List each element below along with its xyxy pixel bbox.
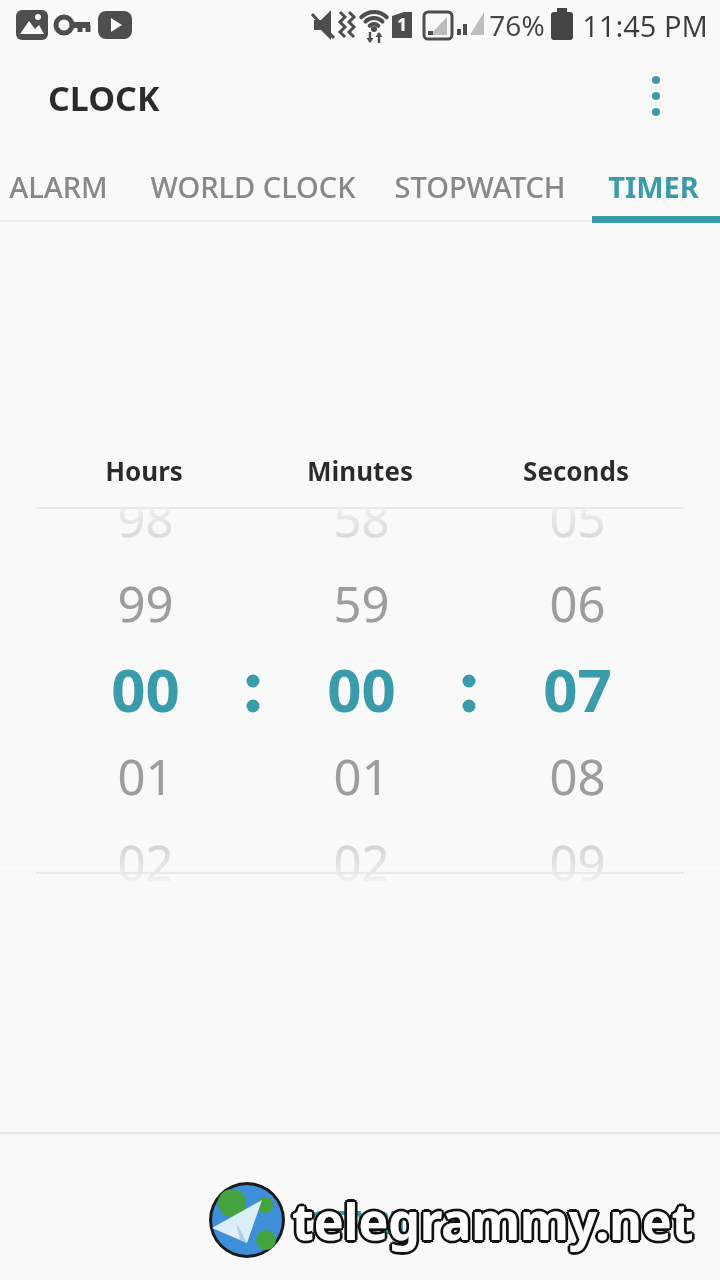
staticText: 01 (117, 743, 174, 810)
staticText: 76% (489, 6, 545, 44)
button[interactable]: 00 (251, 647, 471, 731)
staticText: telegrammy.net (292, 1187, 694, 1255)
button[interactable]: 07 (467, 647, 687, 731)
button[interactable]: 00 (35, 647, 255, 731)
staticText: 59 (333, 570, 390, 637)
staticText: Minutes (307, 453, 413, 488)
staticText: 98 (117, 485, 174, 552)
staticText: STOPWATCH (394, 167, 566, 206)
staticText: 00 (111, 648, 180, 730)
staticText: telegrammy.net (295, 1187, 697, 1255)
staticText: 00 (327, 648, 396, 730)
staticText: CLOCK (48, 75, 160, 115)
staticText: telegrammy.net (290, 1189, 692, 1257)
staticText: telegrammy.net (294, 1185, 696, 1253)
staticText: telegrammy.net (292, 1184, 694, 1252)
staticText: 1 (397, 13, 407, 36)
staticText: 11:45 PM (582, 6, 708, 45)
staticText: 06 (549, 570, 606, 637)
staticText: telegrammy.net (292, 1190, 694, 1258)
button[interactable]: STOPWATCH (370, 156, 590, 216)
staticText: ALARM (9, 167, 108, 206)
button[interactable]: ALARM (0, 156, 158, 216)
staticText: START (311, 1199, 410, 1244)
staticText: 58 (333, 485, 390, 552)
staticText: Hours (105, 453, 183, 488)
staticText: telegrammy.net (294, 1189, 696, 1257)
button[interactable]: WORLD CLOCK (133, 156, 373, 216)
staticText: Seconds (523, 453, 629, 488)
staticText: 09 (549, 829, 606, 896)
staticText: 05 (549, 485, 606, 552)
staticText: 08 (549, 743, 606, 810)
staticText: telegrammy.net (289, 1187, 691, 1255)
staticText: 02 (117, 829, 174, 896)
staticText: 01 (333, 743, 390, 810)
staticText: 02 (333, 829, 390, 896)
staticText: 99 (117, 570, 174, 637)
staticText: WORLD CLOCK (150, 167, 356, 206)
button[interactable]: TIMER (583, 156, 720, 216)
staticText: TIMER (608, 167, 699, 206)
staticText: telegrammy.net (290, 1185, 692, 1253)
button[interactable]: START (240, 1186, 480, 1256)
staticText: 07 (543, 648, 612, 730)
